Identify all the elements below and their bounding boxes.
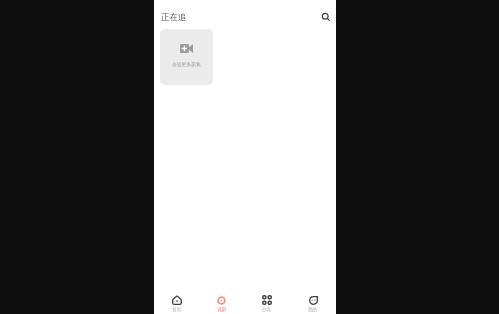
staticText: 我的 [308,307,318,313]
staticText: 去追更多剧集 [172,61,201,67]
button[interactable]: 分类 [244,293,290,314]
staticText: 追剧 [217,307,227,313]
staticText: 正在追 [161,12,187,23]
button[interactable]: 首页 [154,293,199,314]
staticText: 分类 [262,307,272,313]
button[interactable]: 我的 [290,293,336,314]
button[interactable]: 追剧 [199,293,244,314]
button[interactable]: 去追更多剧集 [160,29,213,85]
button[interactable]: Search [319,10,333,24]
staticText: 首页 [172,307,182,313]
